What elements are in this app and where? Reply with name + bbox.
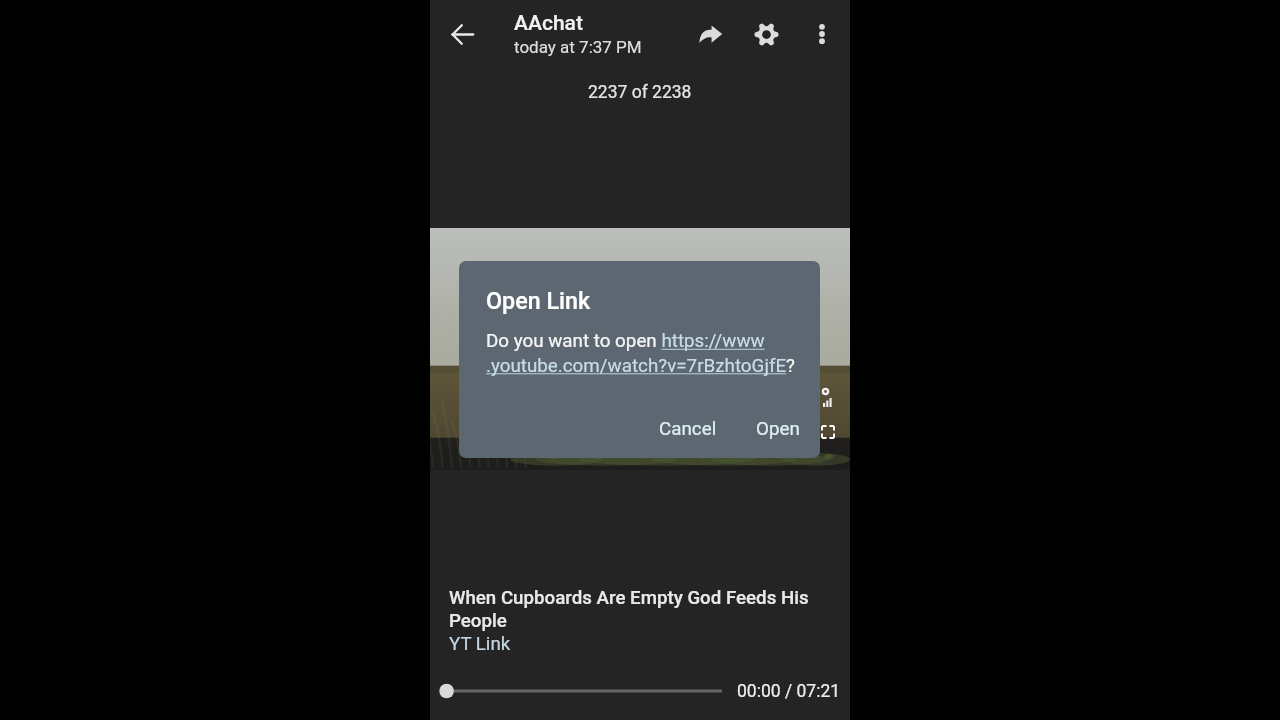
staticText: YT Link <box>449 633 511 655</box>
staticText: Open Link <box>486 287 591 314</box>
button[interactable]: YT Link <box>449 633 511 655</box>
button[interactable]: Play video <box>430 228 850 470</box>
staticText: 00:00 / 07:21 <box>737 681 841 702</box>
staticText: AAchat <box>514 11 583 36</box>
button[interactable]: More options <box>802 14 842 54</box>
staticText: 2237 of 2238 <box>588 82 692 103</box>
button[interactable]: Back <box>438 10 486 58</box>
button[interactable]: Share <box>686 10 734 58</box>
staticText: When Cupboards Are Empty God Feeds His P… <box>449 587 841 632</box>
staticText: Open <box>756 418 800 440</box>
staticText: Do you want to open https://www .youtube… <box>486 330 820 377</box>
staticText: Cancel <box>659 418 717 440</box>
button[interactable]: Open <box>749 412 807 446</box>
button[interactable]: Cancel <box>652 412 724 446</box>
button[interactable]: Settings <box>742 10 790 58</box>
staticText: today at 7:37 PM <box>514 37 642 57</box>
